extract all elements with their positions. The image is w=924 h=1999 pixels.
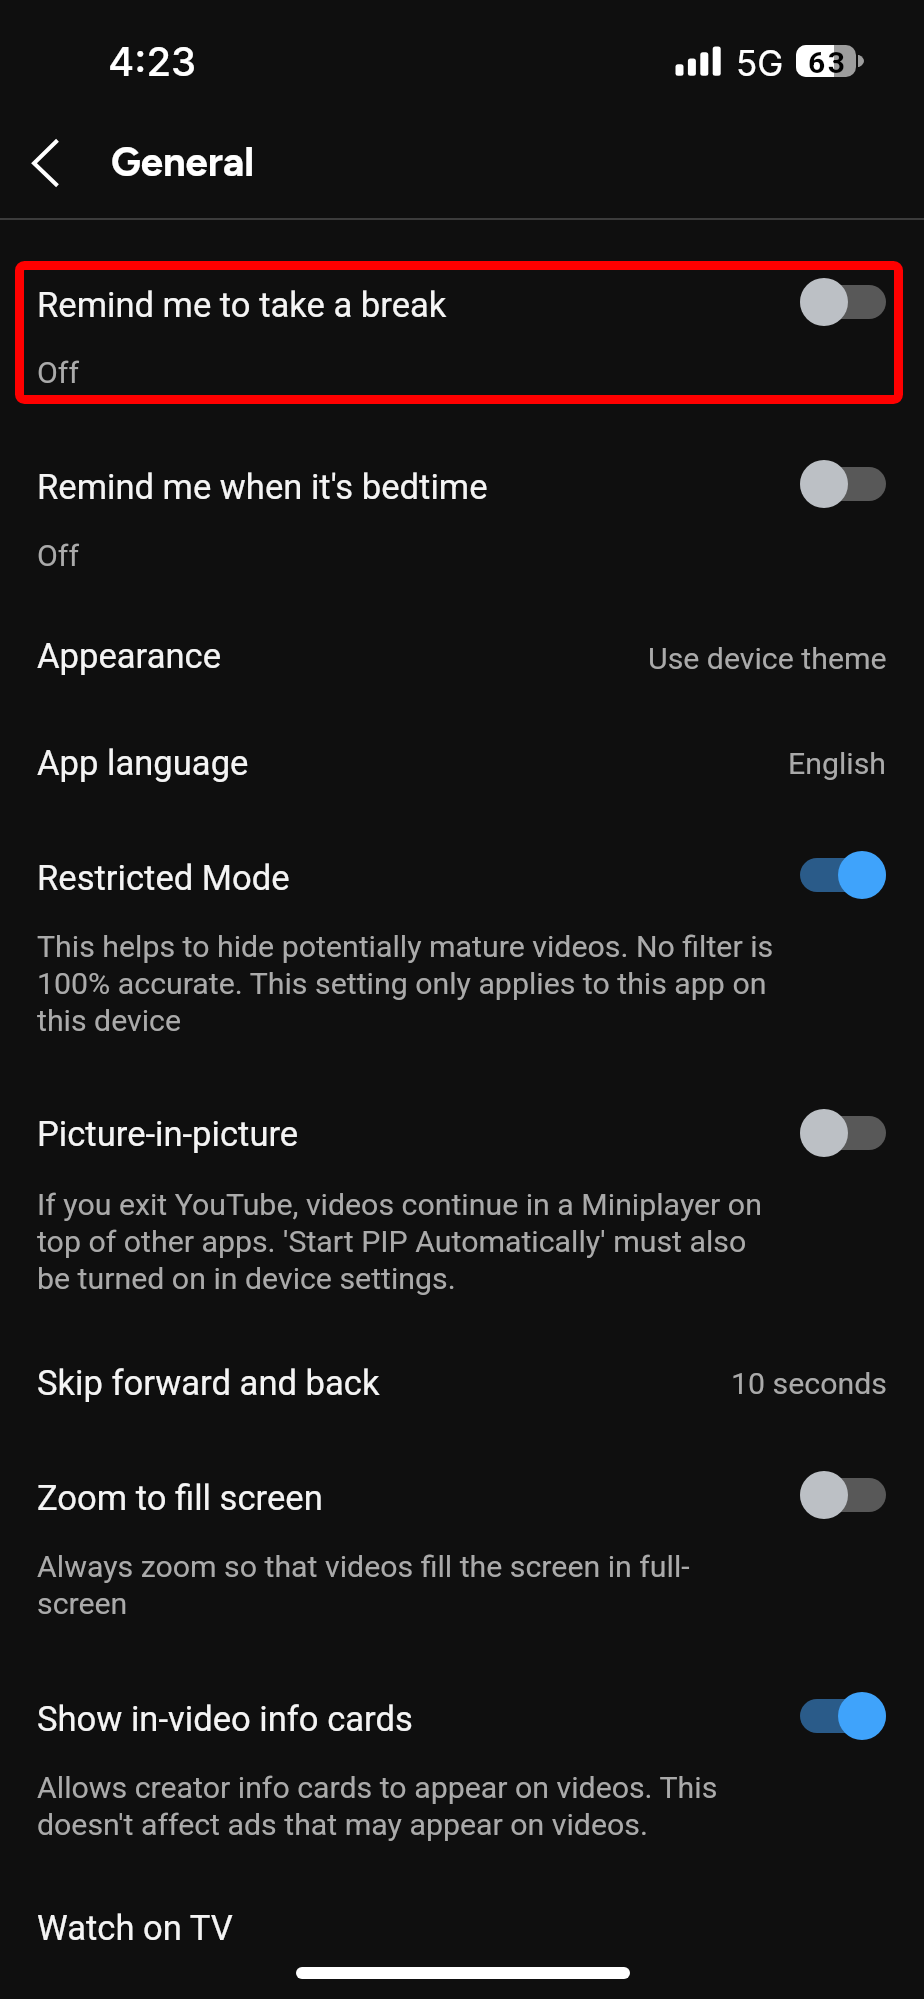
staticText: Remind me when it's bedtime [37,467,488,508]
staticText: General [111,138,255,186]
staticText: Skip forward and back [37,1363,380,1404]
button[interactable]: Remind me to take a break [0,240,924,425]
staticText: Appearance [37,636,221,677]
staticText: Off [37,538,79,574]
button[interactable]: Remind me when it's bedtime [0,425,924,605]
staticText: Off [37,355,79,391]
staticText: 4:23 [108,37,197,85]
staticText: Zoom to fill screen [37,1478,323,1519]
button[interactable]: Skip forward and back [0,1323,924,1433]
staticText: Watch on TV [37,1908,233,1949]
staticText: 10 seconds [731,1366,887,1402]
staticText: If you exit YouTube, videos continue in … [37,1187,780,1297]
button[interactable]: App language [0,705,924,813]
staticText: 63 [808,45,848,80]
button[interactable]: Switch, on [788,1682,896,1750]
button[interactable]: Switch, off [788,1099,896,1167]
button[interactable]: Back [12,130,84,202]
button[interactable]: Show in-video info cards [0,1648,924,1863]
button[interactable]: Switch, off [788,450,896,518]
button[interactable]: Watch on TV [0,1863,924,1963]
staticText: 5G [736,42,784,84]
button[interactable]: Appearance [0,605,924,705]
button[interactable]: Switch, on [788,841,896,909]
button[interactable]: Restricted Mode [0,813,924,1063]
staticText: Allows creator info cards to appear on v… [37,1770,780,1843]
staticText: Picture-in-picture [37,1114,299,1155]
button[interactable]: Zoom to fill screen [0,1433,924,1648]
button[interactable]: Switch, off [788,1461,896,1529]
button[interactable]: Picture-in-picture [0,1063,924,1323]
staticText: English [788,746,887,782]
staticText: Remind me to take a break [37,285,447,326]
other: Cellular signal [674,44,726,78]
staticText: Use device theme [648,641,887,677]
staticText: Always zoom so that videos fill the scre… [37,1549,780,1622]
staticText: Restricted Mode [37,858,290,899]
button[interactable]: Switch, off [788,268,896,336]
staticText: App language [37,743,249,784]
staticText: Show in-video info cards [37,1699,413,1740]
staticText: This helps to hide potentially mature vi… [37,929,780,1039]
